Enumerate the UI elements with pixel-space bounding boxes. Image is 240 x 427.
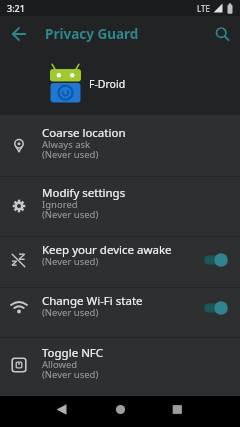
staticText: Coarse location [42,125,126,141]
staticText: 3:21 [7,2,25,14]
staticText: Toggle NFC [42,345,104,361]
button[interactable] [204,252,228,268]
button[interactable] [0,16,38,52]
staticText: (Never used) [42,306,99,319]
staticText: (Never used) [42,208,99,221]
button[interactable]: Toggle NFC [0,338,240,396]
staticText: Modify settings [42,185,126,201]
staticText: Keep your device awake [42,242,172,258]
staticText: F-Droid [89,77,126,91]
staticText: (Never used) [42,368,99,381]
staticText: Always ask [42,138,91,151]
staticText: (Never used) [42,255,99,268]
button[interactable] [80,396,160,427]
button[interactable]: F-Droid [0,52,240,115]
button[interactable] [204,16,240,52]
button[interactable] [204,300,228,316]
staticText: Change Wi-Fi state [42,293,143,309]
staticText: Ignored [42,198,78,211]
button[interactable]: Coarse location [0,115,240,176]
button[interactable] [160,396,240,427]
staticText: Allowed [42,358,78,371]
button[interactable]: Keep your device awake [0,237,240,287]
button[interactable]: Change Wi-Fi state [0,288,240,337]
button[interactable]: Modify settings [0,177,240,236]
button[interactable] [0,396,80,427]
staticText: LTE [197,3,210,14]
staticText: (Never used) [42,148,99,161]
staticText: Privacy Guard [45,25,139,43]
